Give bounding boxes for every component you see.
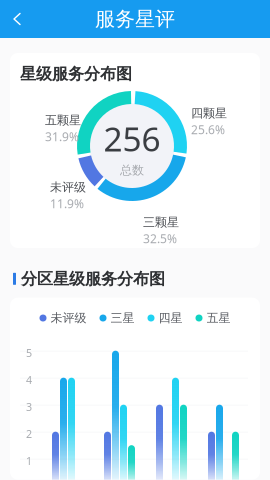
- staticText: 3: [26, 400, 32, 414]
- staticText: 总数: [120, 163, 144, 177]
- staticText: 未评级: [50, 180, 86, 195]
- staticText: 五星: [206, 311, 230, 325]
- staticText: 25.6%: [191, 122, 225, 138]
- staticText: 2: [26, 427, 32, 441]
- staticText: 星级服务分布图: [20, 64, 132, 84]
- button[interactable]: Back: [0, 0, 34, 38]
- staticText: 1: [26, 454, 32, 468]
- staticText: 11.9%: [50, 196, 84, 212]
- staticText: 服务星评: [95, 7, 175, 31]
- staticText: 32.5%: [143, 231, 177, 247]
- staticText: 256: [103, 116, 160, 161]
- staticText: 未评级: [50, 311, 86, 325]
- staticText: 四星: [158, 311, 182, 325]
- staticText: 4: [26, 373, 32, 387]
- staticText: 三颗星: [143, 215, 179, 230]
- staticText: 四颗星: [191, 106, 227, 121]
- staticText: 分区星级服务分布图: [21, 269, 165, 289]
- staticText: 31.9%: [45, 129, 79, 145]
- staticText: 三星: [110, 311, 134, 325]
- staticText: 5: [26, 346, 32, 360]
- staticText: 五颗星: [45, 113, 81, 128]
